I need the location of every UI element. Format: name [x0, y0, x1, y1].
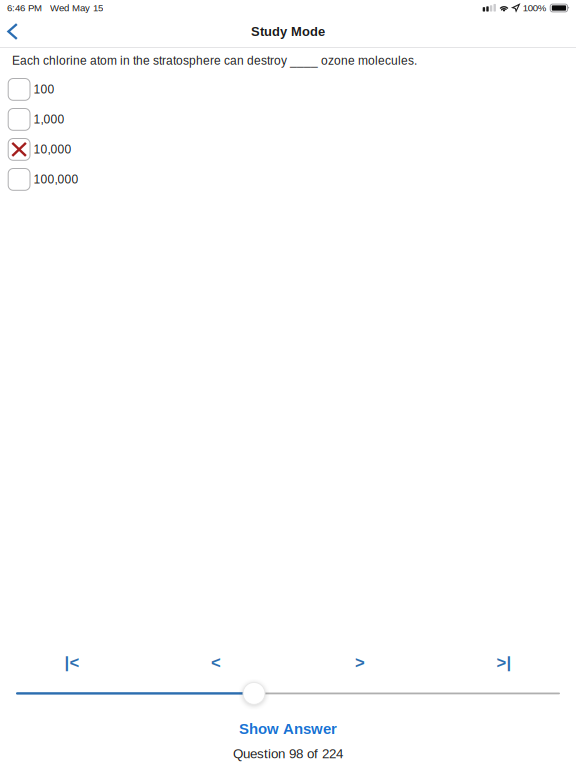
button[interactable]: 100,000 — [0, 164, 576, 194]
staticText: 10,000 — [33, 143, 71, 156]
staticText: |< — [64, 653, 79, 672]
button[interactable]: Last — [432, 647, 576, 677]
staticText: 6:46 PM — [7, 3, 42, 13]
staticText: Study Mode — [251, 24, 325, 39]
button[interactable]: Previous — [144, 647, 288, 677]
button[interactable]: 100 — [0, 74, 576, 104]
button[interactable]: 10,000 — [0, 134, 576, 164]
staticText: Question 98 of 224 — [233, 746, 343, 761]
staticText: 100 — [33, 83, 54, 96]
button[interactable]: Back — [0, 16, 30, 47]
button[interactable]: Show Answer — [225, 715, 351, 742]
staticText: 100,000 — [33, 173, 78, 186]
button[interactable]: Question position — [0, 680, 576, 704]
staticText: 100% — [523, 3, 547, 13]
button[interactable]: First — [0, 647, 144, 677]
staticText: Each chlorine atom in the stratosphere c… — [12, 54, 417, 67]
staticText: >| — [496, 653, 511, 672]
staticText: 1,000 — [33, 113, 64, 126]
button[interactable]: 1,000 — [0, 104, 576, 134]
button[interactable]: Next — [288, 647, 432, 677]
staticText: Show Answer — [239, 720, 337, 737]
staticText: > — [355, 653, 365, 672]
staticText: < — [211, 653, 221, 672]
staticText: Wed May 15 — [50, 3, 103, 13]
